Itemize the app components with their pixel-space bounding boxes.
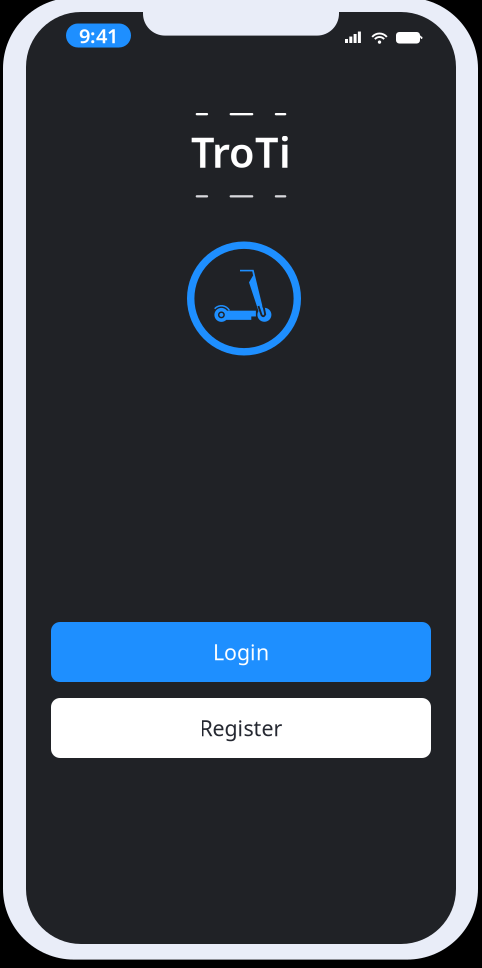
staticText: Register: [199, 714, 282, 742]
staticText: 9:41: [79, 22, 118, 49]
staticText: Login: [213, 638, 269, 666]
staticText: TroTi: [191, 124, 291, 179]
button[interactable]: Login: [51, 622, 431, 682]
button[interactable]: Register: [51, 698, 431, 758]
